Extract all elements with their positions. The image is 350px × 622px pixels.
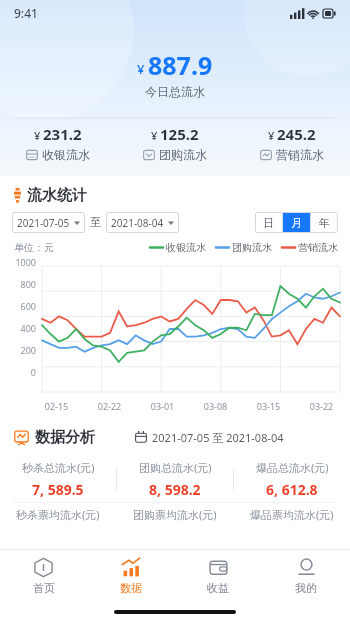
- button[interactable]: 爆品总流水(元): [234, 456, 350, 502]
- staticText: 2021-08-04: [111, 216, 164, 230]
- button[interactable]: ¥: [116, 124, 233, 176]
- button[interactable]: ¥: [0, 124, 116, 176]
- button[interactable]: 日: [255, 212, 282, 233]
- staticText: 0: [0, 366, 36, 378]
- staticText: 231.2: [43, 124, 82, 144]
- staticText: ¥: [268, 128, 275, 143]
- staticText: 03-15: [242, 400, 295, 412]
- staticText: 6, 612.8: [266, 480, 318, 499]
- staticText: 03-01: [136, 400, 189, 412]
- staticText: 团购流水: [159, 147, 207, 162]
- staticText: 收益: [207, 581, 229, 595]
- staticText: 8, 598.2: [149, 480, 201, 499]
- staticText: 600: [0, 300, 36, 312]
- staticText: 秒杀票均流水(元): [16, 507, 100, 522]
- staticText: 9:41: [14, 5, 38, 21]
- button[interactable]: 秒杀总流水(元): [0, 456, 116, 502]
- button[interactable]: 数据: [87, 550, 174, 602]
- staticText: 日: [263, 216, 274, 230]
- staticText: 03-22: [295, 400, 348, 412]
- staticText: 团购流水: [232, 241, 272, 254]
- staticText: 爆品票均流水(元): [250, 507, 334, 522]
- button[interactable]: 年: [311, 212, 338, 233]
- staticText: 收银流水: [42, 147, 90, 162]
- staticText: 首页: [33, 581, 55, 595]
- staticText: 团购票均流水(元): [133, 507, 217, 522]
- staticText: 03-08: [189, 400, 242, 412]
- staticText: ¥: [137, 60, 145, 78]
- button[interactable]: 团购总流水(元): [117, 456, 233, 502]
- button[interactable]: ¥: [233, 124, 350, 176]
- button[interactable]: 月: [283, 212, 310, 233]
- button[interactable]: 2021-07-05: [12, 212, 85, 233]
- staticText: 800: [0, 278, 36, 290]
- staticText: 200: [0, 344, 36, 356]
- staticText: 今日总流水: [145, 84, 205, 99]
- staticText: 营销流水: [276, 147, 324, 162]
- staticText: 887.9: [148, 48, 213, 82]
- staticText: ¥: [34, 128, 41, 143]
- staticText: 400: [0, 322, 36, 334]
- staticText: 流水统计: [27, 186, 87, 205]
- staticText: 2021-07-05: [17, 216, 70, 230]
- staticText: 我的: [295, 581, 317, 595]
- staticText: 至: [90, 215, 101, 229]
- button[interactable]: 2021-08-04: [106, 212, 179, 233]
- staticText: 数据分析: [35, 428, 95, 447]
- staticText: 秒杀总流水(元): [22, 460, 95, 475]
- staticText: 7, 589.5: [32, 480, 84, 499]
- staticText: 团购总流水(元): [139, 460, 212, 475]
- staticText: 245.2: [277, 124, 316, 144]
- staticText: 收银流水: [166, 241, 206, 254]
- staticText: 02-22: [83, 400, 136, 412]
- staticText: 月: [291, 216, 302, 230]
- staticText: 02-15: [30, 400, 83, 412]
- staticText: 数据: [120, 581, 142, 595]
- button[interactable]: 首页: [0, 550, 87, 602]
- staticText: 爆品总流水(元): [256, 460, 329, 475]
- staticText: 单位：元: [14, 241, 54, 254]
- staticText: 1000: [0, 256, 36, 268]
- staticText: 年: [319, 216, 330, 230]
- staticText: 2021-07-05 至 2021-08-04: [152, 430, 284, 445]
- staticText: 125.2: [160, 124, 199, 144]
- staticText: ¥: [151, 128, 158, 143]
- staticText: 营销流水: [298, 241, 338, 254]
- button[interactable]: 我的: [262, 550, 350, 602]
- button[interactable]: 收益: [174, 550, 262, 602]
